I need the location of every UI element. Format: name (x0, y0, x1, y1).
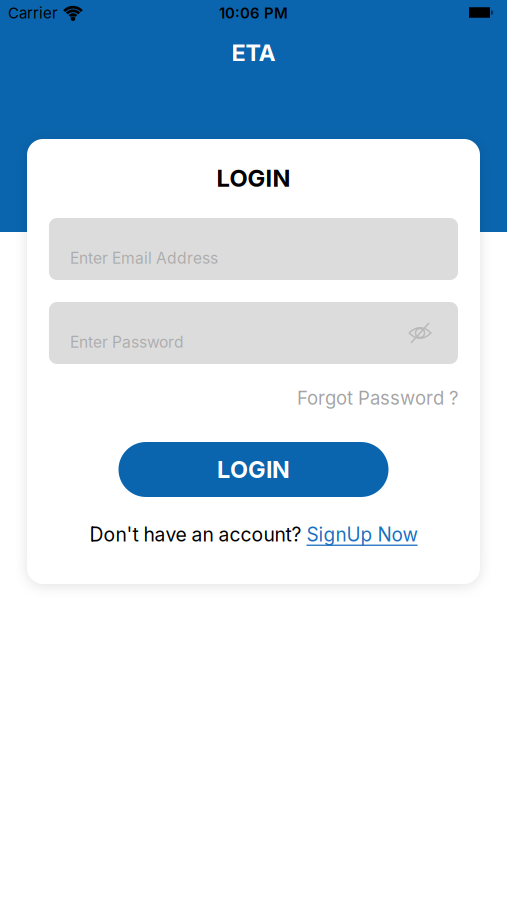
staticText: ETA (231, 39, 275, 67)
staticText: LOGIN (216, 164, 290, 192)
staticText: 10:06 PM (219, 4, 288, 22)
staticText: Carrier (8, 4, 58, 22)
staticText: Don't have an account? (89, 523, 301, 546)
staticText: LOGIN (217, 455, 290, 484)
button[interactable]: SignUp Now (306, 523, 417, 546)
button[interactable]: LOGIN (118, 442, 388, 497)
staticText: Enter Email Address (70, 249, 218, 267)
staticText: Forgot Password ? (297, 387, 458, 409)
button[interactable]: Forgot Password ? (297, 387, 458, 409)
staticText: SignUp Now (306, 523, 417, 546)
staticText: Enter Password (70, 333, 184, 351)
button[interactable]: Show password (408, 321, 432, 345)
